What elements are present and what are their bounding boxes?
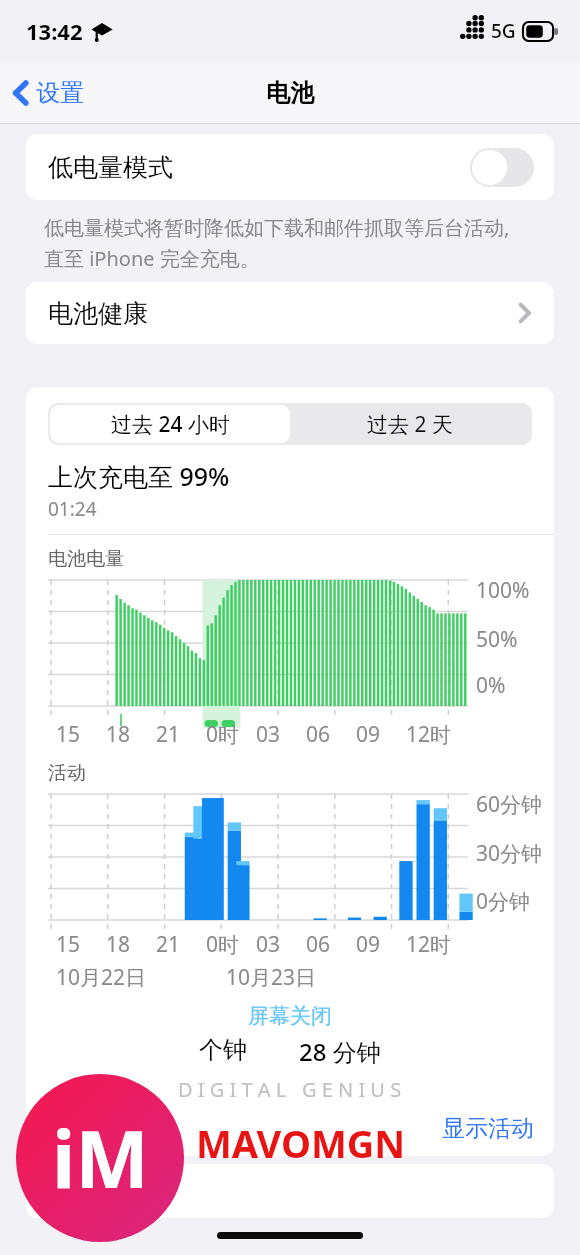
staticText: 5G bbox=[491, 18, 516, 44]
staticText: 100% bbox=[476, 576, 530, 605]
staticText: 10月23日 bbox=[226, 963, 317, 992]
button[interactable]: 电池健康 bbox=[26, 282, 554, 344]
staticText: 12时 bbox=[406, 930, 452, 959]
staticText: 屏幕关闭 bbox=[248, 1003, 332, 1029]
staticText: 电池 bbox=[266, 78, 314, 108]
staticText: 活动 bbox=[48, 761, 86, 785]
staticText: 过去 24 小时 bbox=[111, 410, 230, 439]
staticText: 18 bbox=[106, 930, 131, 959]
staticText: 21 bbox=[156, 720, 181, 749]
staticText: 18 bbox=[106, 720, 131, 749]
staticText: 12时 bbox=[406, 720, 452, 749]
staticText: 21 bbox=[156, 930, 181, 959]
staticText: 设置 bbox=[36, 78, 84, 108]
staticText: 直至 iPhone 完全充电。 bbox=[44, 245, 260, 272]
button[interactable]: 低电量模式 bbox=[26, 134, 554, 200]
staticText: 03 bbox=[256, 930, 281, 959]
staticText: 30分钟 bbox=[476, 839, 543, 868]
staticText: 09 bbox=[356, 720, 381, 749]
staticText: MAVOMGN bbox=[196, 1117, 406, 1169]
staticText: 0分钟 bbox=[476, 887, 531, 916]
staticText: 电池电量 bbox=[48, 547, 124, 571]
staticText: 28 分钟 bbox=[299, 1035, 381, 1068]
staticText: 显示活动 bbox=[442, 1114, 534, 1142]
staticText: 15 bbox=[56, 930, 81, 959]
staticText: 低电量模式将暂时降低如下载和邮件抓取等后台活动, bbox=[44, 214, 510, 241]
staticText: 06 bbox=[306, 720, 331, 749]
staticText: 01:24 bbox=[48, 496, 97, 522]
staticText: 过去 2 天 bbox=[367, 410, 453, 439]
button[interactable]: 微信 bbox=[26, 1164, 554, 1218]
staticText: 量 bbox=[48, 1114, 71, 1143]
staticText: 0时 bbox=[206, 720, 240, 749]
staticText: 上次充电至 99% bbox=[48, 459, 230, 493]
staticText: 低电量模式 bbox=[48, 152, 173, 183]
staticText: 0时 bbox=[206, 930, 240, 959]
staticText: 60分钟 bbox=[476, 790, 543, 819]
staticText: 电池健康 bbox=[48, 298, 148, 329]
staticText: 微信 bbox=[102, 1177, 148, 1206]
staticText: 10月22日 bbox=[56, 963, 147, 992]
button[interactable]: 低电量模式开关 bbox=[470, 148, 534, 187]
staticText: 个钟 bbox=[199, 1035, 247, 1065]
staticText: 0% bbox=[476, 671, 506, 700]
staticText: 13:42 bbox=[26, 16, 83, 46]
staticText: 03 bbox=[256, 720, 281, 749]
staticText: D I G I T A L G E N I U S bbox=[178, 1076, 402, 1103]
staticText: iM bbox=[52, 1105, 149, 1211]
button[interactable]: 显示活动 bbox=[422, 1110, 554, 1146]
staticText: 09 bbox=[356, 930, 381, 959]
staticText: 15 bbox=[56, 720, 81, 749]
button[interactable]: 过去 24 小时 bbox=[50, 405, 290, 443]
staticText: 50% bbox=[476, 625, 518, 654]
staticText: 06 bbox=[306, 930, 331, 959]
button[interactable]: 过去 2 天 bbox=[290, 405, 530, 443]
button[interactable]: 设置 bbox=[0, 70, 96, 116]
